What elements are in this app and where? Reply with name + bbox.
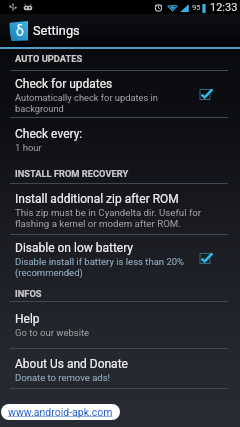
staticText: INFOS (15, 288, 42, 299)
staticText: δ (16, 23, 24, 39)
button[interactable]: Toggle (199, 250, 214, 265)
staticText: 95 (192, 3, 201, 12)
button[interactable]: Help (0, 301, 240, 348)
button[interactable]: Install additional zip after ROM (0, 183, 240, 234)
staticText: Disable on low battery (15, 241, 134, 255)
staticText: 12:33 (210, 1, 238, 14)
staticText: Automatically check for updates in backg… (15, 92, 158, 114)
button[interactable]: Check for updates (0, 70, 240, 117)
staticText: Help (15, 312, 40, 326)
button[interactable]: About Us and Donate (0, 348, 240, 388)
staticText: INSTALL FROM RECOVERY (15, 168, 129, 179)
staticText: AUTO UPDATES (15, 53, 83, 64)
button[interactable]: Toggle (199, 86, 214, 101)
button[interactable]: δ (0, 14, 240, 47)
button[interactable]: Check every: (0, 117, 240, 165)
staticText: 1 hour (15, 142, 42, 153)
button[interactable]: www.android-apk.com (1, 404, 120, 420)
staticText: Settings (33, 23, 80, 38)
staticText: Install additional zip after ROM (15, 192, 179, 206)
button[interactable]: Disable on low battery (0, 234, 240, 284)
staticText: Go to our website (15, 327, 90, 338)
staticText: Disable install if battery is less than … (15, 256, 185, 278)
staticText: Donate to remove ads! (15, 372, 111, 383)
staticText: Check for updates (15, 77, 113, 91)
staticText: This zip must be in Cyandelta dir. Usefu… (15, 207, 202, 229)
staticText: About Us and Donate (15, 357, 128, 371)
staticText: Check every: (15, 127, 83, 141)
staticText: www.android-apk.com (8, 406, 113, 418)
